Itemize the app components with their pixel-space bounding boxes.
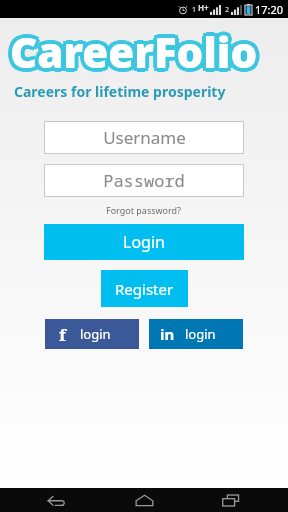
staticText: Login [123, 231, 165, 253]
staticText: 1 [192, 5, 197, 15]
staticText: CareerFolio [8, 21, 256, 78]
button[interactable]: LinkedIn login [149, 319, 243, 349]
button[interactable]: Login [44, 224, 244, 260]
staticText: CareerFolio [13, 26, 261, 83]
staticText: CareerFolio [8, 25, 256, 82]
button[interactable]: Recent apps [201, 488, 261, 512]
staticText: Register [115, 279, 174, 299]
staticText: CareerFolio [10, 26, 258, 83]
staticText: Careers for lifetime prosperity [14, 82, 226, 101]
staticText: Password [103, 169, 185, 192]
staticText: CareerFolio [12, 21, 260, 78]
button[interactable]: Register [101, 270, 188, 307]
staticText: CareerFolio [14, 23, 262, 80]
staticText: CareerFolio [10, 20, 258, 77]
staticText: CareerFolio [6, 23, 254, 80]
button[interactable]: Password [44, 164, 244, 197]
staticText: H+ [198, 2, 209, 13]
staticText: CareerFolio [13, 20, 261, 77]
staticText: f [59, 323, 66, 346]
button[interactable]: Back [27, 488, 87, 512]
button[interactable]: Facebook login [45, 319, 139, 349]
staticText: in [160, 324, 175, 344]
staticText: 17:20 [255, 2, 284, 17]
button[interactable]: Forgot password? [0, 204, 288, 216]
staticText: CareerFolio [10, 27, 258, 84]
staticText: CareerFolio [7, 23, 255, 80]
staticText: CareerFolio [10, 23, 258, 80]
staticText: CareerFolio [10, 19, 258, 76]
staticText: CareerFolio [12, 25, 260, 82]
staticText: CareerFolio [13, 23, 261, 80]
button[interactable]: Username [44, 121, 244, 154]
staticText: CareerFolio [7, 20, 255, 77]
staticText: login [185, 325, 216, 343]
staticText: Forgot password? [106, 204, 182, 216]
button[interactable]: Home [114, 488, 174, 512]
staticText: login [80, 325, 111, 343]
staticText: CareerFolio [7, 26, 255, 83]
staticText: 2 [225, 5, 230, 15]
staticText: Username [103, 126, 186, 149]
